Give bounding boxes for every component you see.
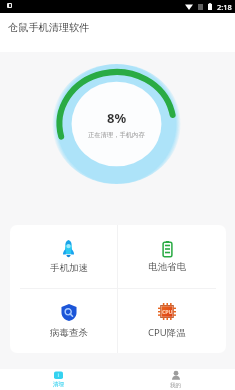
staticText: 电池省电 (148, 261, 186, 273)
staticText: 2:18 (217, 2, 232, 12)
staticText: CPU (162, 308, 173, 315)
button[interactable]: 病毒查杀 (20, 289, 117, 353)
button[interactable]: CPU (118, 289, 216, 353)
staticText: 我的 (170, 382, 182, 389)
staticText: 正在清理，手机内存 (88, 131, 145, 139)
staticText: 清理 (53, 381, 65, 388)
staticText: 仓鼠手机清理软件 (8, 21, 90, 34)
button[interactable]: 我的 (117, 369, 235, 390)
staticText: 手机加速 (50, 262, 88, 274)
button[interactable]: 电池省电 (118, 225, 216, 288)
button[interactable]: 手机加速 (20, 225, 117, 288)
staticText: 8% (107, 109, 127, 127)
staticText: CPU降温 (148, 326, 186, 339)
button[interactable]: 清理 (0, 369, 117, 390)
staticText: 病毒查杀 (50, 327, 88, 339)
